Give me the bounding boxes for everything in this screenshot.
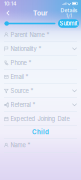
staticText: Details — [60, 7, 77, 14]
staticText: Source * — [11, 87, 34, 94]
button[interactable]: Nationality * — [0, 42, 81, 56]
staticText: 10:14 — [4, 0, 16, 7]
button[interactable]: Back — [4, 9, 12, 17]
button[interactable]: Expected Joining Date — [0, 112, 81, 126]
staticText: Child — [32, 128, 49, 136]
button[interactable]: Details — [60, 7, 77, 19]
staticText: Tour — [33, 9, 48, 17]
staticText: 1/1 — [66, 13, 72, 19]
staticText: Referral * — [11, 101, 36, 108]
button[interactable]: Email * — [0, 70, 81, 84]
button[interactable]: Phone * — [0, 56, 81, 70]
staticText: Email * — [11, 73, 29, 80]
button[interactable]: Submit — [58, 19, 79, 28]
button[interactable]: Source * — [0, 84, 81, 98]
staticText: Parent Name * — [11, 31, 50, 38]
button[interactable]: Parent Name * — [0, 28, 81, 42]
staticText: Submit — [59, 20, 77, 27]
staticText: Name * — [11, 142, 31, 149]
staticText: Phone * — [11, 59, 32, 66]
button[interactable]: Referral * — [0, 98, 81, 112]
button[interactable]: Name * — [0, 138, 81, 152]
staticText: Expected Joining Date — [11, 115, 70, 122]
staticText: Nationality * — [11, 45, 42, 52]
